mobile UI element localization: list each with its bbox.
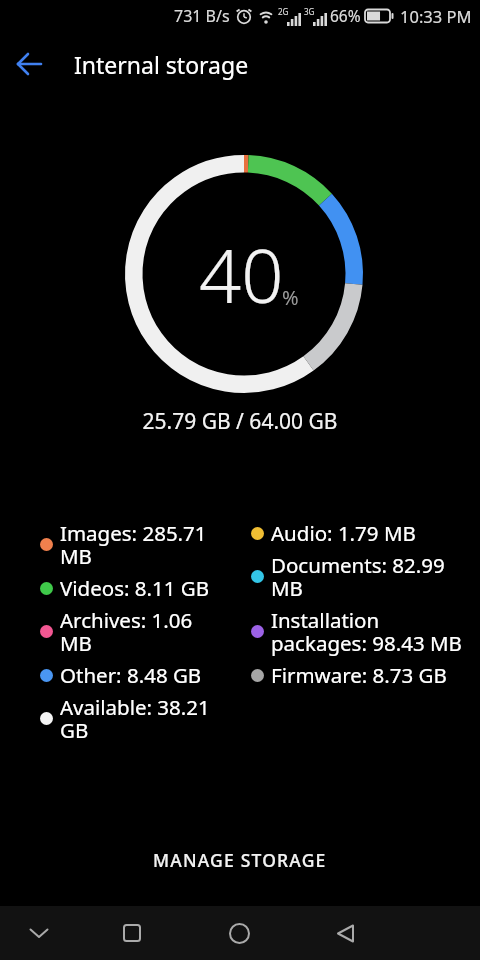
staticText: 40 <box>199 224 284 325</box>
staticText: Archives: 1.06 MB <box>60 606 193 657</box>
staticText: Internal storage <box>74 49 249 80</box>
staticText: 731 B/s <box>174 5 230 27</box>
staticText: Audio: 1.79 MB <box>271 519 416 547</box>
staticText: 25.79 GB / 64.00 GB <box>0 407 480 436</box>
staticText: Images: 285.71 MB <box>60 519 207 570</box>
staticText: 2G <box>278 6 289 17</box>
button[interactable] <box>15 909 63 957</box>
staticText: 10:33 PM <box>400 5 472 27</box>
staticText: Installation packages: 98.43 MB <box>271 606 462 657</box>
staticText: Firmware: 8.73 GB <box>271 661 447 689</box>
staticText: % <box>282 284 299 311</box>
button[interactable] <box>108 909 156 957</box>
staticText: Videos: 8.11 GB <box>60 574 210 602</box>
staticText: Available: 38.21 GB <box>60 693 210 744</box>
button[interactable] <box>321 909 369 957</box>
button[interactable]: MANAGE STORAGE <box>135 838 345 882</box>
staticText: 66% <box>330 5 361 26</box>
staticText: MANAGE STORAGE <box>153 848 327 872</box>
staticText: Other: 8.48 GB <box>60 661 202 689</box>
staticText: 3G <box>304 6 315 17</box>
button[interactable] <box>215 909 263 957</box>
staticText: Documents: 82.99 MB <box>271 551 445 602</box>
button[interactable] <box>0 31 60 97</box>
